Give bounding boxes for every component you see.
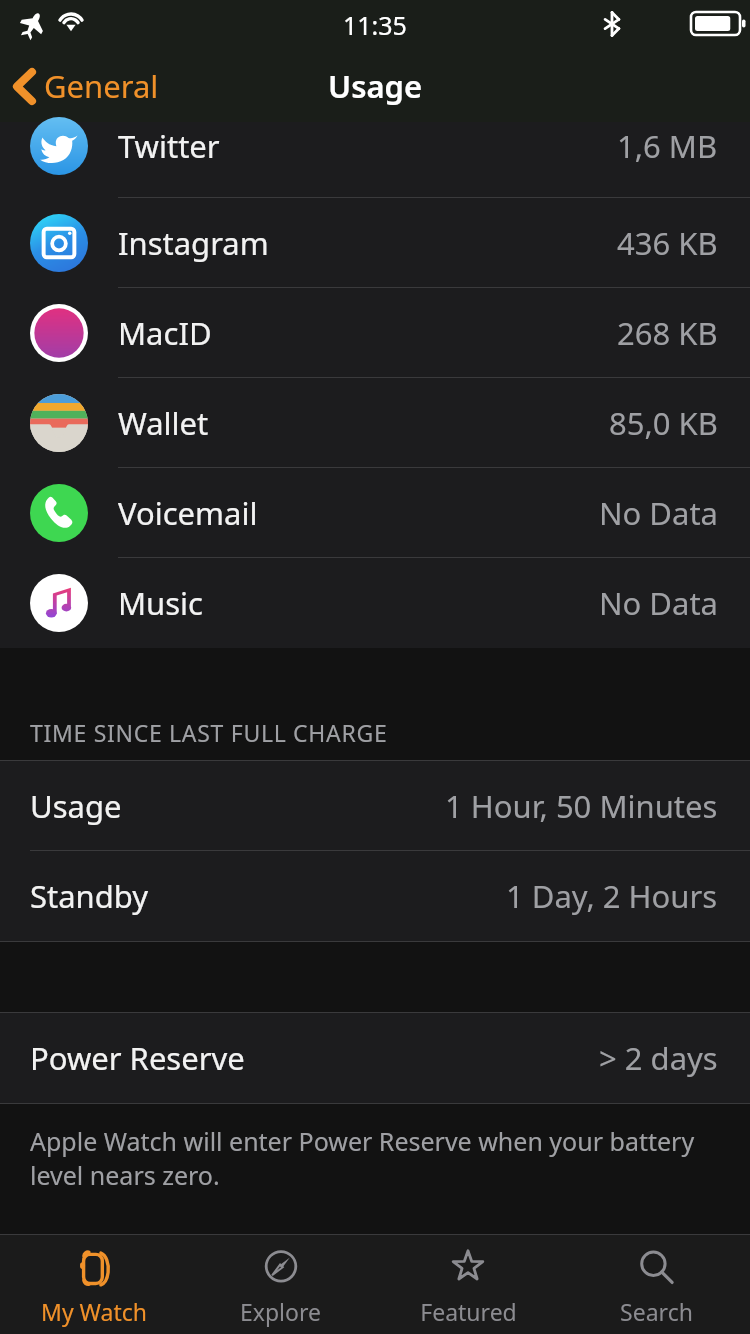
button[interactable]: Search [562, 1235, 750, 1334]
staticText: No Data [599, 582, 718, 624]
staticText: 268 KB [617, 312, 718, 354]
staticText: No Data [599, 492, 718, 534]
staticText: Featured [420, 1296, 517, 1327]
staticText: Instagram [118, 222, 269, 264]
staticText: Usage [30, 785, 122, 827]
button[interactable]: Back to General [0, 55, 173, 117]
staticText: TIME SINCE LAST FULL CHARGE [30, 717, 388, 748]
staticText: Music [118, 582, 204, 624]
staticText: 85,0 KB [609, 402, 718, 444]
staticText: Voicemail [118, 492, 258, 534]
button[interactable]: MacID [0, 288, 750, 378]
button[interactable]: Wallet [0, 378, 750, 468]
staticText: Wallet [118, 402, 209, 444]
staticText: Power Reserve [30, 1037, 245, 1079]
staticText: 436 KB [617, 222, 718, 264]
button[interactable]: Voicemail [0, 468, 750, 558]
staticText: Explore [240, 1296, 321, 1327]
staticText: 1 Day, 2 Hours [506, 875, 718, 917]
staticText: > 2 days [599, 1037, 718, 1079]
button[interactable]: Instagram [0, 198, 750, 288]
staticText: Apple Watch will enter Power Reserve whe… [30, 1124, 710, 1192]
button[interactable]: Explore [187, 1235, 374, 1334]
staticText: Usage [328, 65, 423, 107]
staticText: Standby [30, 875, 149, 917]
staticText: 11:35 [343, 8, 407, 42]
staticText: MacID [118, 312, 212, 354]
button[interactable]: Music [0, 558, 750, 648]
button[interactable]: My Watch [0, 1235, 187, 1334]
button[interactable]: Power Reserve [0, 1013, 750, 1103]
button[interactable]: Usage [0, 761, 750, 851]
button[interactable]: Twitter [0, 122, 750, 198]
staticText: Twitter [118, 125, 220, 167]
button[interactable]: Featured [374, 1235, 562, 1334]
staticText: 1,6 MB [617, 125, 718, 167]
staticText: General [44, 65, 159, 107]
staticText: Search [620, 1296, 693, 1327]
button[interactable]: Standby [0, 851, 750, 941]
staticText: My Watch [41, 1296, 147, 1327]
staticText: 1 Hour, 50 Minutes [445, 785, 718, 827]
